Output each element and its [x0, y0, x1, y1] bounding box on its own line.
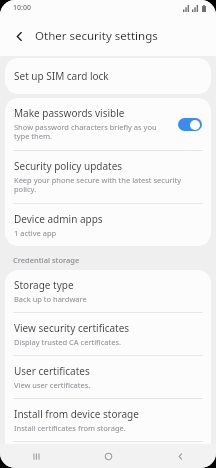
staticText: User certificates — [14, 364, 90, 378]
button[interactable]: User certificates — [5, 356, 211, 398]
staticText: 10:00 — [13, 3, 31, 13]
staticText: Keep your phone secure with the latest s… — [14, 175, 202, 195]
staticText: Display trusted CA certificates. — [14, 337, 121, 347]
staticText: Credential storage — [13, 255, 80, 265]
button[interactable]: View security certificates — [5, 313, 211, 355]
staticText: Other security settings — [35, 28, 158, 44]
staticText: View security certificates — [14, 321, 130, 335]
button[interactable]: Set up SIM card lock — [5, 58, 211, 94]
button[interactable]: Back — [7, 24, 31, 48]
button[interactable]: Device admin apps — [5, 204, 211, 246]
button[interactable]: Home — [72, 444, 144, 468]
button[interactable]: Install from device storage — [5, 399, 211, 441]
staticText: Show password characters briefly as you … — [14, 122, 173, 142]
staticText: View user certificates. — [14, 380, 91, 390]
button[interactable]: Make passwords visible — [5, 98, 211, 150]
staticText: Install certificates from storage. — [14, 423, 126, 433]
button[interactable]: Make passwords visible toggle — [178, 118, 202, 131]
staticText: Storage type — [14, 278, 74, 292]
staticText: Set up SIM card lock — [14, 69, 109, 83]
staticText: 1 active app — [14, 228, 57, 238]
button[interactable]: Storage type — [5, 270, 211, 312]
staticText: Security policy updates — [14, 159, 123, 173]
button[interactable]: Back — [144, 444, 216, 468]
staticText: Back up to hardware — [14, 294, 87, 304]
staticText: Install from device storage — [14, 407, 139, 421]
staticText: Make passwords visible — [14, 106, 125, 120]
button[interactable]: Recents — [0, 444, 72, 468]
staticText: Device admin apps — [14, 212, 103, 226]
button[interactable]: Security policy updates — [5, 151, 211, 203]
